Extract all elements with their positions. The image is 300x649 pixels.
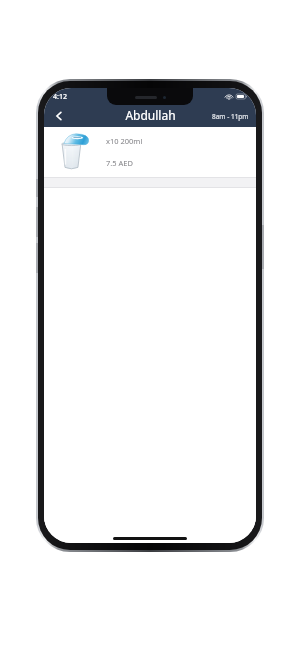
button[interactable]: Back (49, 106, 69, 126)
staticText: x10 200ml (106, 136, 143, 146)
staticText: Abdullah (125, 107, 176, 123)
staticText: 7.5 AED (106, 158, 133, 168)
staticText: 8am - 11pm (212, 112, 249, 121)
button[interactable]: x10 200ml (44, 127, 256, 177)
staticText: 4:12 (53, 92, 67, 102)
